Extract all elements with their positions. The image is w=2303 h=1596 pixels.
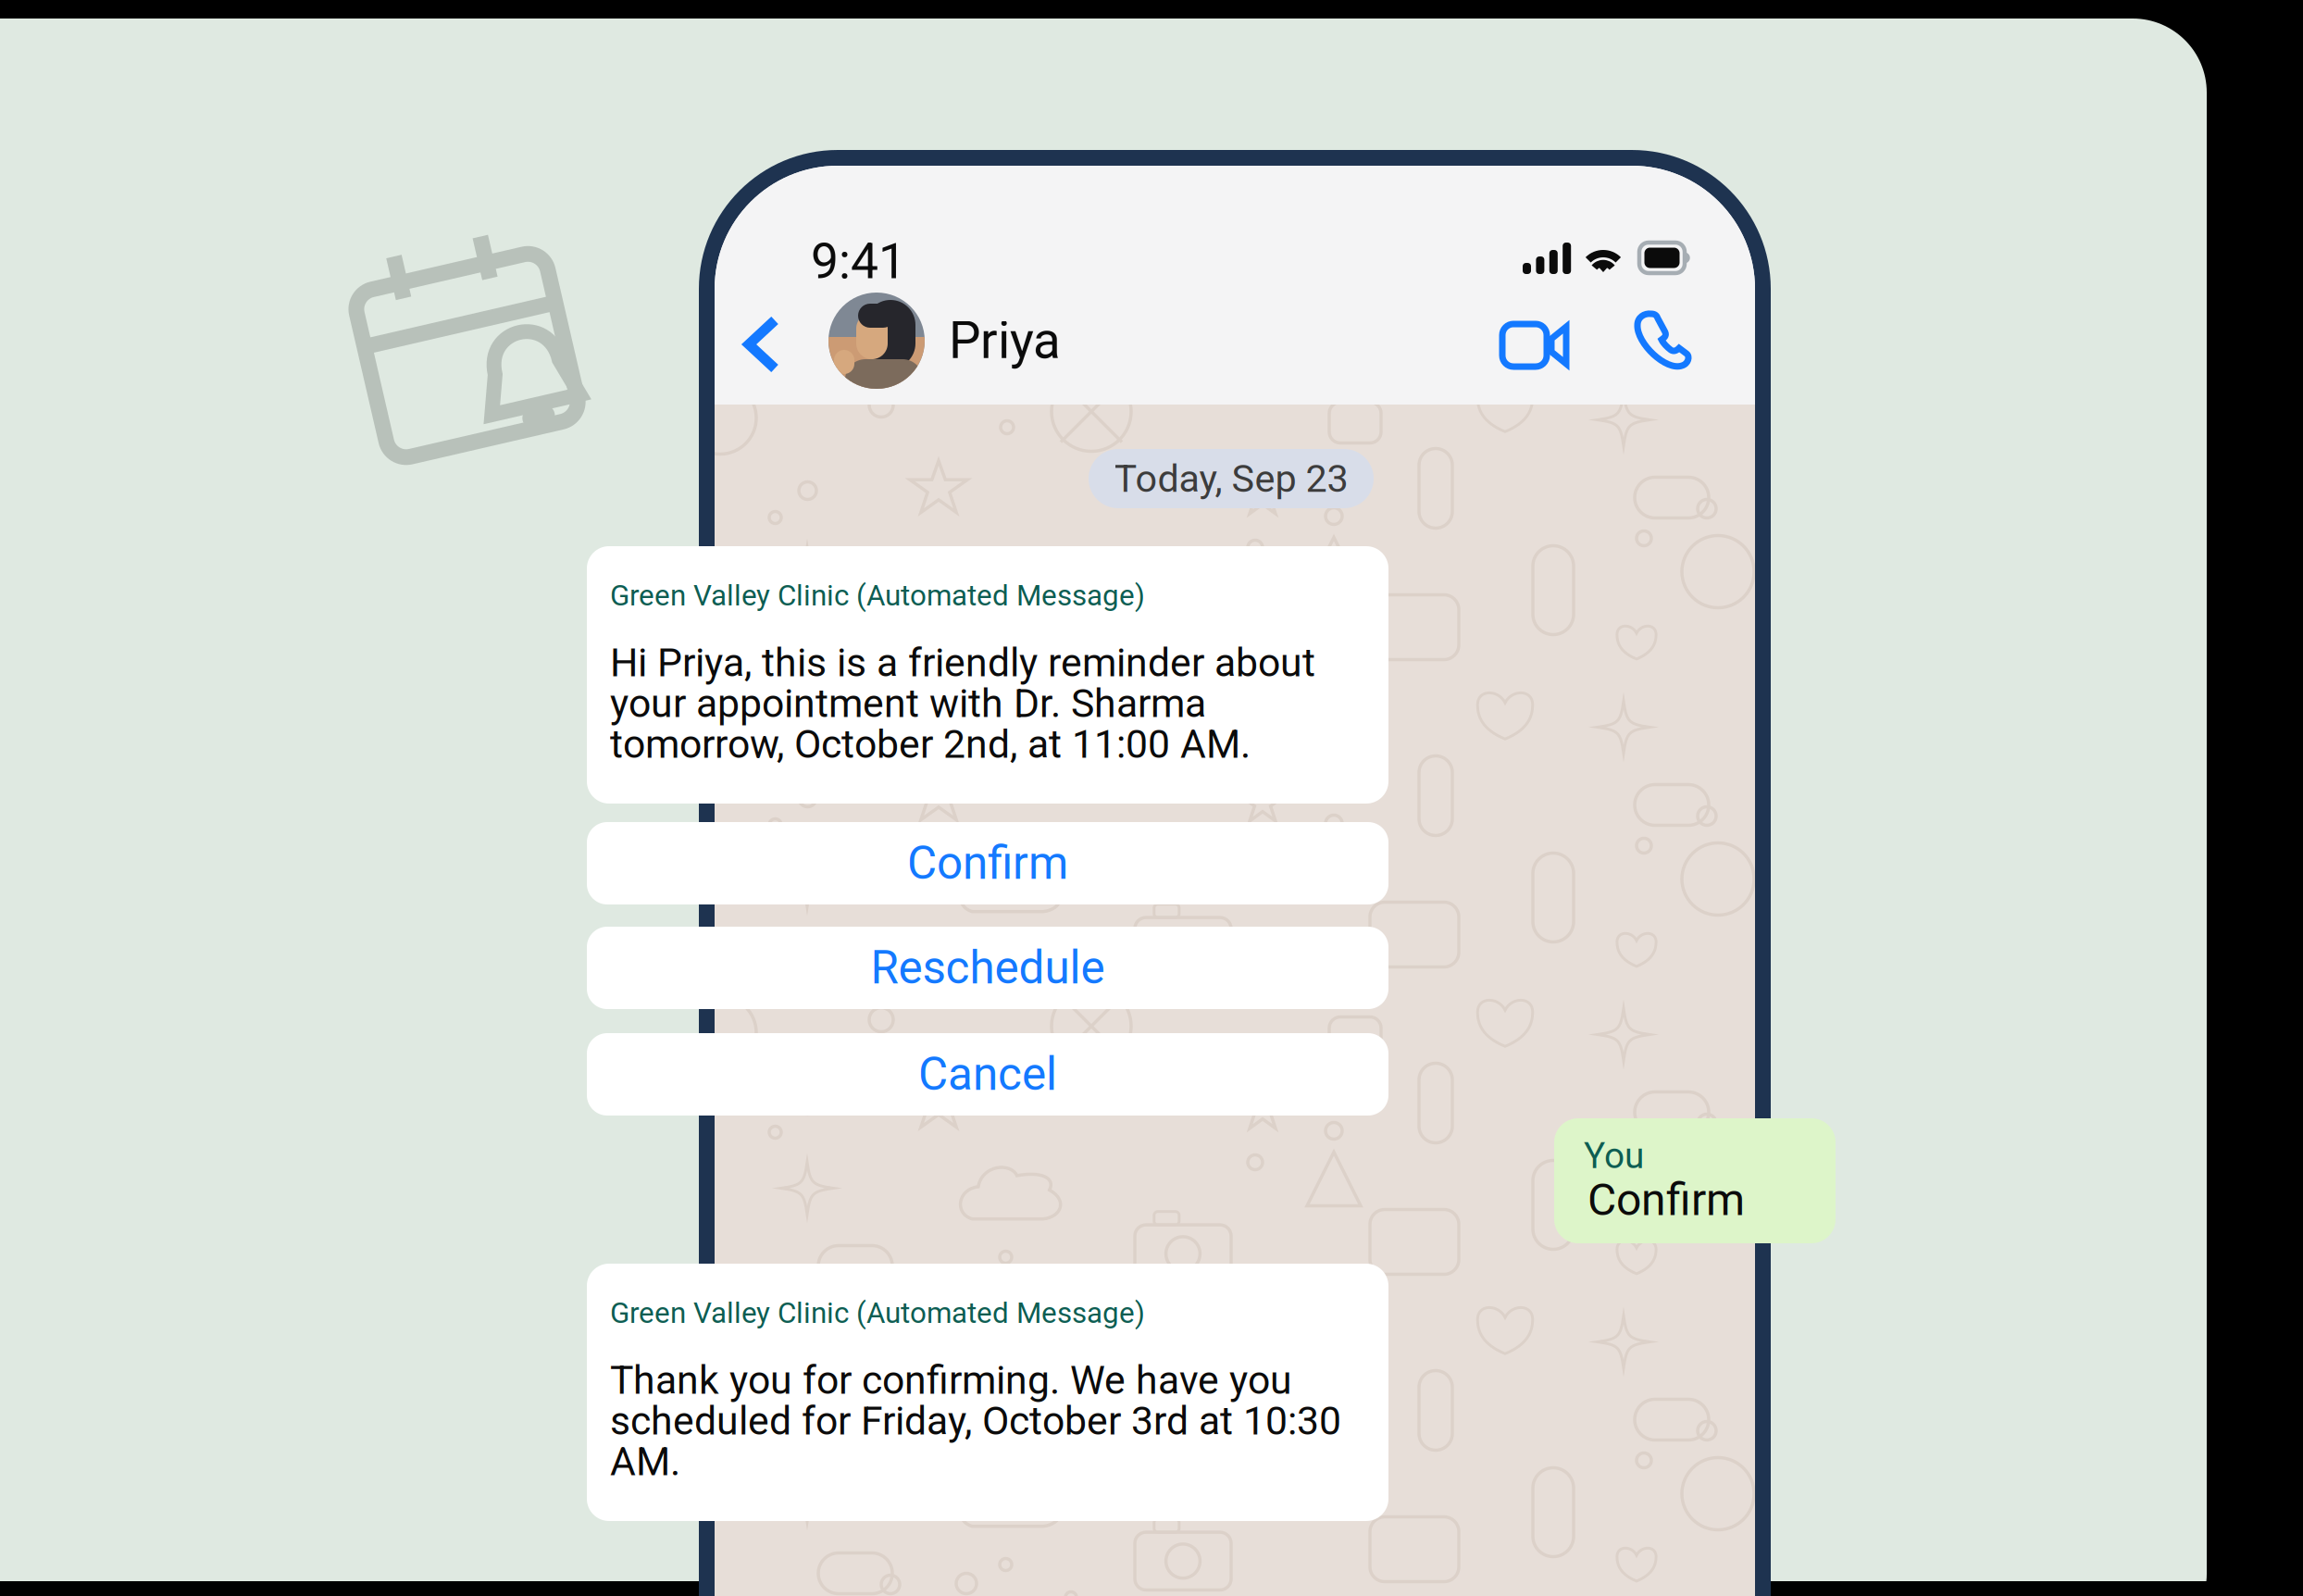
button[interactable]: Cancel	[587, 1033, 1388, 1116]
button[interactable]: Confirm	[587, 822, 1388, 904]
staticText: AM.	[610, 1439, 680, 1485]
button[interactable]: Back	[720, 297, 803, 392]
staticText: Cancel	[918, 1048, 1057, 1101]
staticText: Green Valley Clinic (Automated Message)	[610, 579, 1145, 613]
staticText: Confirm	[907, 837, 1068, 890]
staticText: your appointment with Dr. Sharma	[610, 680, 1206, 727]
staticText: You	[1584, 1135, 1644, 1177]
button[interactable]: Voice call	[1614, 292, 1710, 388]
staticText: scheduled for Friday, October 3rd at 10:…	[610, 1398, 1341, 1444]
staticText: Thank you for confirming. We have you	[610, 1357, 1292, 1403]
staticText: 9:41	[811, 232, 906, 290]
staticText: Hi Priya, this is a friendly reminder ab…	[610, 640, 1315, 686]
staticText: Confirm	[1587, 1174, 1745, 1226]
button[interactable]: Video call	[1484, 305, 1587, 385]
staticText: Priya	[949, 311, 1061, 370]
button[interactable]: Reschedule	[587, 927, 1388, 1009]
button[interactable]: Priya	[828, 293, 1061, 389]
staticText: Today, Sep 23	[1114, 456, 1348, 501]
staticText: Reschedule	[871, 941, 1105, 995]
staticText: tomorrow, October 2nd, at 11:00 AM.	[610, 721, 1251, 767]
staticText: Green Valley Clinic (Automated Message)	[610, 1296, 1145, 1330]
